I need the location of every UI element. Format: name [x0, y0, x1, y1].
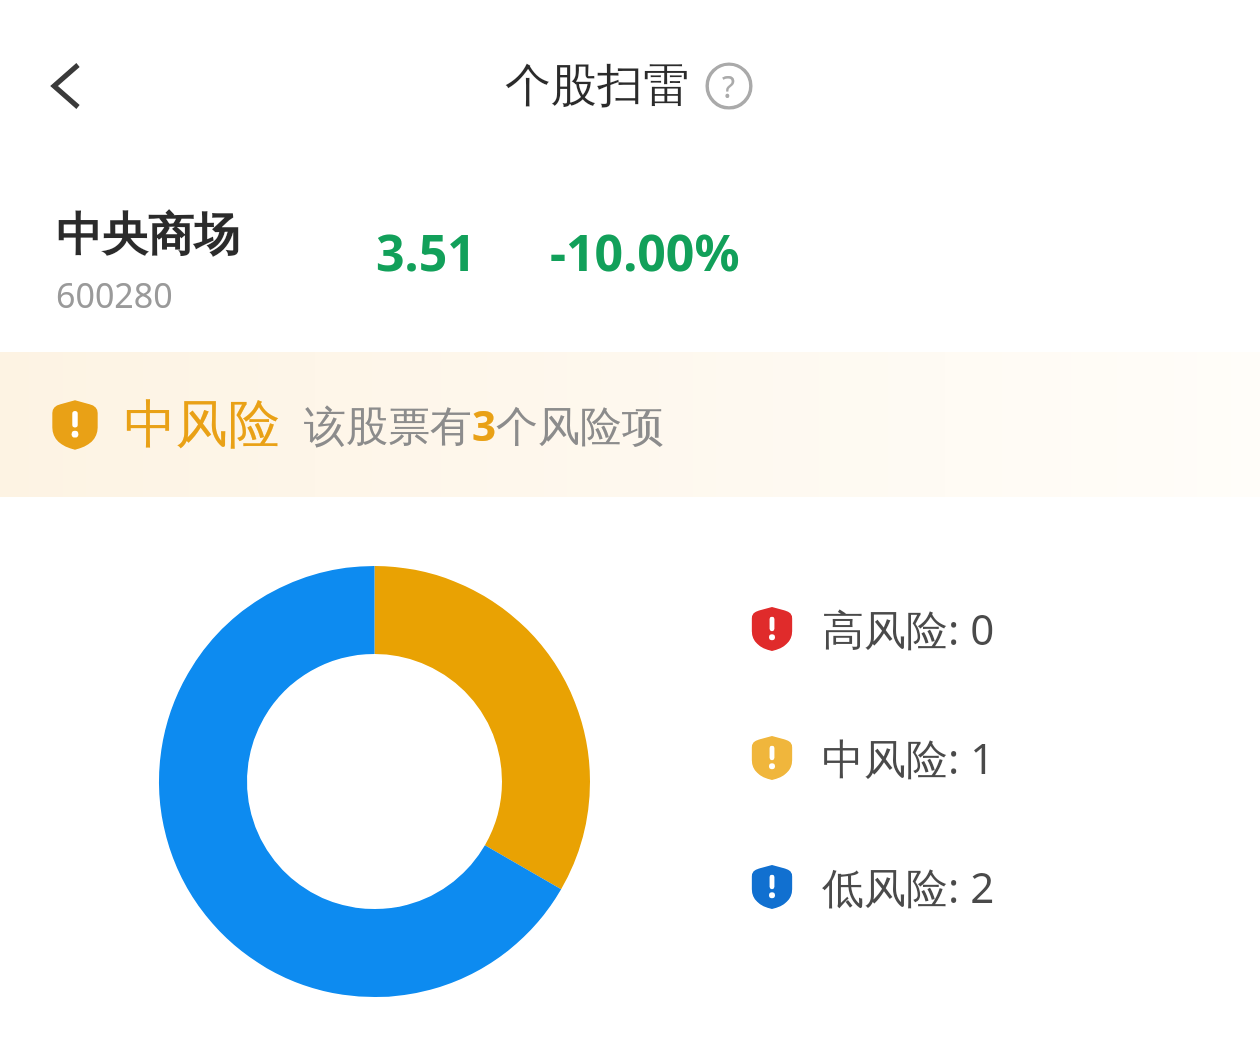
staticText: 中央商场: [56, 206, 240, 264]
button[interactable]: 中风险: 1: [748, 729, 995, 786]
button[interactable]: 低风险: 2: [748, 858, 995, 915]
button[interactable]: 中央商场: [0, 172, 1260, 352]
button[interactable]: Back: [16, 36, 116, 136]
staticText: 该股票有3个风险项: [304, 396, 665, 453]
staticText: 中风险: 1: [822, 729, 995, 786]
button[interactable]: Help: [703, 60, 755, 112]
button[interactable]: 中风险: [0, 352, 1260, 497]
staticText: 600280: [56, 272, 173, 318]
button[interactable]: 高风险: 0: [748, 600, 995, 657]
staticText: 3.51: [376, 218, 476, 286]
staticText: 高风险: 0: [822, 600, 995, 657]
staticText: 个股扫雷: [505, 57, 689, 115]
staticText: 中风险: [124, 392, 280, 458]
staticText: -10.00%: [550, 218, 740, 286]
staticText: ?: [722, 66, 736, 107]
staticText: 低风险: 2: [822, 858, 995, 915]
